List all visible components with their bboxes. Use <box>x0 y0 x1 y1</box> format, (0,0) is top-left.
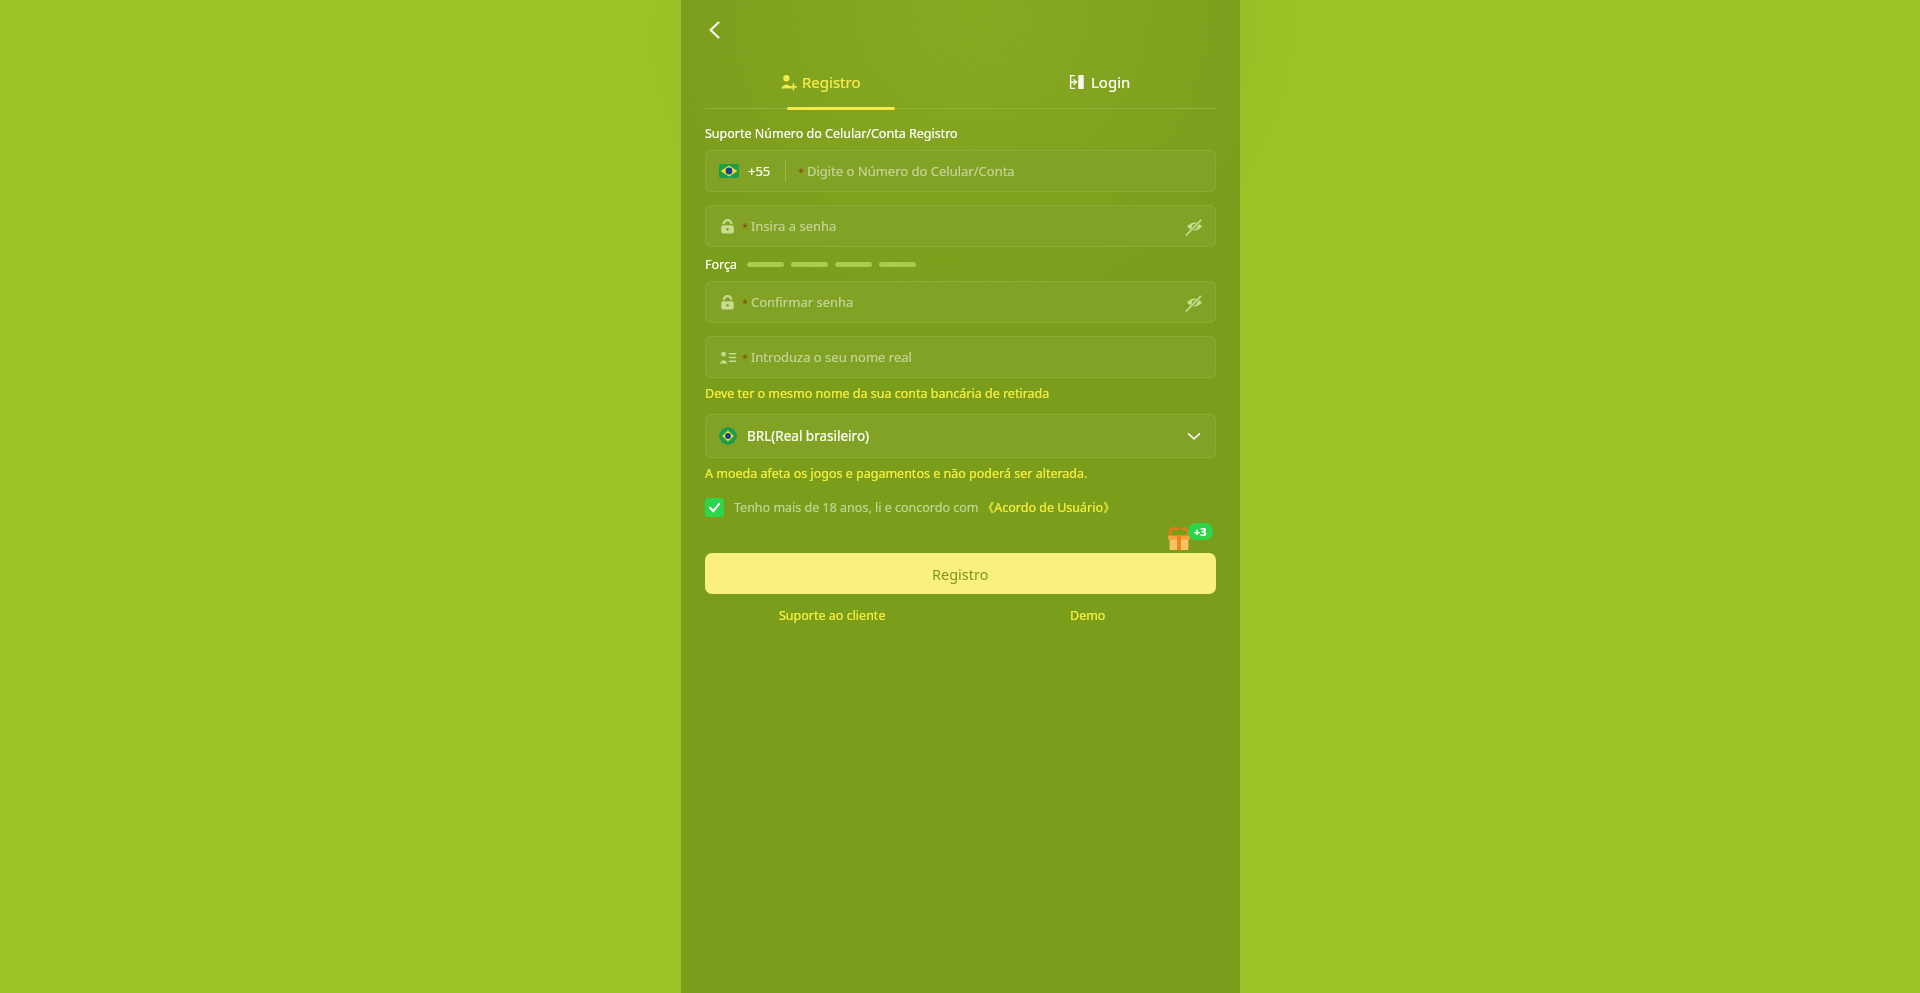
button[interactable]: Suporte ao cliente <box>705 607 960 624</box>
staticText: * Confirmar senha <box>742 293 854 311</box>
button[interactable]: Tenho mais de 18 anos, li e concordo com… <box>705 498 1216 517</box>
button[interactable]: Registro <box>681 58 960 106</box>
button[interactable]: Show password <box>1177 209 1211 243</box>
staticText: Suporte Número do Celular/Conta Registro <box>705 125 958 142</box>
staticText: Registro <box>932 564 989 584</box>
button[interactable]: Registro <box>705 553 1216 594</box>
button[interactable]: +55 <box>705 150 1216 192</box>
staticText: Login <box>1091 72 1131 92</box>
staticText: Suporte ao cliente <box>779 607 886 624</box>
staticText: Deve ter o mesmo nome da sua conta bancá… <box>705 385 1050 402</box>
button[interactable]: Show confirm password <box>1177 285 1211 319</box>
staticText: * Introduza o seu nome real <box>742 348 912 366</box>
staticText: BRL(Real brasileiro) <box>747 427 870 445</box>
staticText: +55 <box>748 162 771 180</box>
button[interactable]: * Introduza o seu nome real <box>705 336 1216 378</box>
button[interactable]: Back <box>693 8 737 52</box>
staticText: +3 <box>1194 524 1207 539</box>
staticText: Força <box>705 256 737 273</box>
button[interactable]: Demo <box>960 607 1216 624</box>
staticText: * Digite o Número do Celular/Conta <box>798 162 1015 180</box>
staticText: Registro <box>802 72 861 92</box>
button[interactable]: * Confirmar senha <box>705 281 1216 323</box>
staticText: Tenho mais de 18 anos, li e concordo com… <box>734 499 1116 516</box>
staticText: A moeda afeta os jogos e pagamentos e nã… <box>705 465 1088 482</box>
staticText: * Insira a senha <box>742 217 837 235</box>
staticText: Demo <box>1070 607 1106 624</box>
button[interactable]: Login <box>960 58 1240 106</box>
button[interactable]: BRL(Real brasileiro) <box>705 414 1216 458</box>
button[interactable]: * Insira a senha <box>705 205 1216 247</box>
